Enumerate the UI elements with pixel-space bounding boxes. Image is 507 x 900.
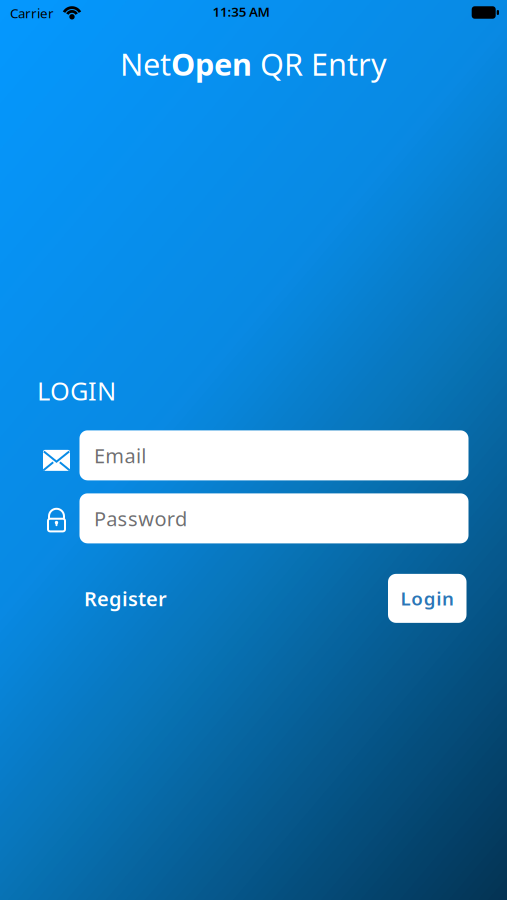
staticText: Register (84, 585, 167, 612)
staticText: Net (120, 43, 171, 84)
button[interactable]: Email (79, 430, 468, 480)
staticText: Login (401, 586, 454, 611)
button[interactable]: Register (84, 585, 167, 612)
button[interactable]: Login (388, 574, 466, 623)
button[interactable]: Password (79, 493, 468, 543)
staticText: QR Entry (252, 43, 387, 84)
staticText: 11:35 AM (212, 3, 270, 20)
staticText: Email (94, 442, 146, 469)
staticText: Carrier (10, 4, 54, 22)
staticText: LOGIN (37, 374, 116, 407)
staticText: Open (171, 43, 252, 84)
staticText: Password (94, 505, 187, 532)
